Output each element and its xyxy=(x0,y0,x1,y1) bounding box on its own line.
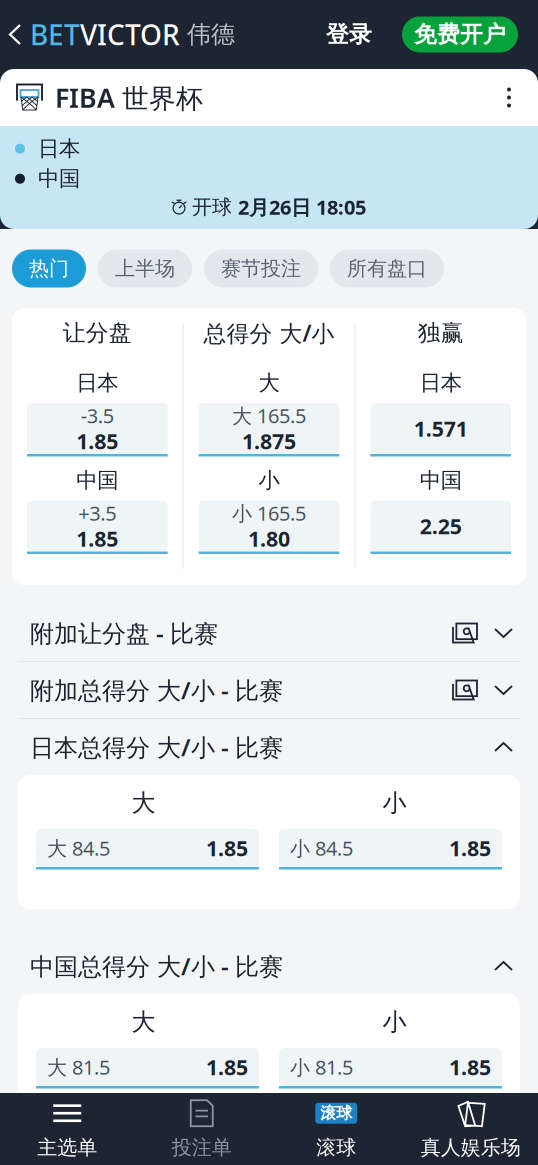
button[interactable]: +3.5 xyxy=(27,500,168,554)
staticText: BET xyxy=(30,16,80,53)
staticText: 附加让分盘 - 比赛 xyxy=(30,617,218,649)
staticText: 1.85 xyxy=(449,834,491,862)
staticText: 伟德 xyxy=(180,20,235,49)
staticText: 开球 xyxy=(186,195,238,219)
staticText: 上半场 xyxy=(115,256,175,281)
staticText: 小 xyxy=(382,1007,406,1037)
button[interactable]: 小 165.5 xyxy=(199,500,339,554)
staticText: 1.571 xyxy=(414,414,468,443)
button[interactable]: 中国总得分 大/小 - 比赛 xyxy=(0,938,538,994)
staticText: 1.85 xyxy=(76,427,118,455)
button[interactable]: 1.571 xyxy=(370,403,511,456)
staticText: 1.85 xyxy=(206,834,248,862)
staticText: 日本 xyxy=(76,370,118,396)
button[interactable]: 2.25 xyxy=(370,500,511,554)
button[interactable]: 大 165.5 xyxy=(199,403,339,456)
staticText: 大 165.5 xyxy=(232,402,306,429)
button[interactable]: 附加让分盘 - 比赛 xyxy=(0,605,538,661)
button[interactable]: 上半场 xyxy=(98,249,192,287)
staticText: VICTOR xyxy=(80,16,180,53)
staticText: 小 xyxy=(382,788,406,818)
staticText: 大 84.5 xyxy=(47,835,110,861)
staticText: 大 xyxy=(131,1007,155,1037)
staticText: 日本 xyxy=(38,136,80,162)
staticText: 总得分 大/小 xyxy=(203,318,334,348)
staticText: 赛节投注 xyxy=(221,256,301,281)
button[interactable]: 投注单 xyxy=(134,1093,269,1165)
staticText: 投注单 xyxy=(172,1135,232,1160)
staticText: 日本 xyxy=(420,370,462,396)
button[interactable]: 附加总得分 大/小 - 比赛 xyxy=(0,662,538,718)
staticText: 1.85 xyxy=(206,1053,248,1081)
staticText: 1.85 xyxy=(449,1053,491,1081)
staticText: 让分盘 xyxy=(63,319,132,347)
staticText: 大 81.5 xyxy=(47,1054,110,1080)
staticText: 热门 xyxy=(29,256,69,281)
staticText: 2月26日 18:05 xyxy=(238,194,366,220)
button[interactable]: 所有盘口 xyxy=(330,249,444,287)
staticText: FIBA 世界杯 xyxy=(55,80,203,115)
staticText: 主选单 xyxy=(37,1135,97,1160)
staticText: 中国 xyxy=(76,467,118,494)
staticText: 小 84.5 xyxy=(290,835,353,861)
staticText: 小 xyxy=(258,467,279,494)
button[interactable]: 大 84.5 xyxy=(36,829,259,869)
button[interactable]: 大 81.5 xyxy=(36,1048,259,1088)
staticText: 独赢 xyxy=(418,319,464,347)
button[interactable]: 小 84.5 xyxy=(279,829,502,869)
button[interactable]: -3.5 xyxy=(27,403,168,456)
staticText: 大 xyxy=(131,788,155,818)
button[interactable]: More options xyxy=(488,69,530,126)
staticText: 免费开户 xyxy=(414,21,506,48)
staticText: 2.25 xyxy=(420,512,462,540)
staticText: 中国总得分 大/小 - 比赛 xyxy=(30,950,283,982)
button[interactable]: 赛节投注 xyxy=(204,249,318,287)
button[interactable]: 小 81.5 xyxy=(279,1048,502,1088)
button[interactable]: 登录 xyxy=(312,0,386,69)
staticText: 附加总得分 大/小 - 比赛 xyxy=(30,674,283,706)
staticText: 1.85 xyxy=(76,524,118,553)
button[interactable]: 日本总得分 大/小 - 比赛 xyxy=(0,719,538,775)
staticText: 真人娱乐场 xyxy=(421,1135,521,1160)
button[interactable]: 主选单 xyxy=(0,1093,134,1165)
staticText: -3.5 xyxy=(81,402,114,429)
button[interactable]: 真人娱乐场 xyxy=(403,1093,538,1165)
button[interactable]: Back xyxy=(0,0,30,69)
staticText: 1.80 xyxy=(248,524,290,553)
staticText: 所有盘口 xyxy=(347,256,427,281)
button[interactable]: 滚球 xyxy=(269,1093,403,1165)
button[interactable]: 免费开户 xyxy=(402,16,518,52)
staticText: 大 xyxy=(258,370,279,396)
staticText: 滚球 xyxy=(316,1135,356,1160)
button[interactable]: 热门 xyxy=(12,249,86,287)
staticText: 滚球 xyxy=(320,1103,352,1123)
staticText: 日本总得分 大/小 - 比赛 xyxy=(30,731,283,763)
staticText: +3.5 xyxy=(78,500,116,526)
staticText: 小 81.5 xyxy=(290,1054,353,1080)
staticText: 1.875 xyxy=(242,427,296,455)
staticText: 小 165.5 xyxy=(232,500,306,526)
staticText: 中国 xyxy=(420,467,462,494)
staticText: 中国 xyxy=(38,166,80,192)
staticText: 登录 xyxy=(326,21,372,48)
